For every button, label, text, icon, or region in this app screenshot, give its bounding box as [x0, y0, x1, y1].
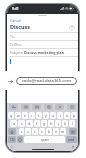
- button[interactable]: Cc/Bcc:: [7, 41, 78, 48]
- button[interactable]: o: [64, 112, 70, 119]
- staticText: r: [31, 113, 33, 118]
- staticText: c: [34, 129, 36, 134]
- button[interactable]: v: [39, 128, 45, 135]
- staticText: To:: [10, 34, 15, 39]
- staticText: Discuss marketing plan: [24, 50, 64, 55]
- button[interactable]: t: [36, 112, 42, 119]
- staticText: o: [66, 113, 69, 118]
- staticText: e: [24, 113, 26, 118]
- button[interactable]: w: [15, 112, 21, 119]
- button[interactable]: space: [24, 136, 65, 143]
- button[interactable]: Tool 3: [44, 104, 53, 110]
- staticText: j: [58, 121, 59, 126]
- button[interactable]: To:: [7, 33, 78, 40]
- button[interactable]: r: [29, 112, 35, 119]
- staticText: y: [45, 113, 47, 118]
- staticText: l: [72, 121, 73, 126]
- button[interactable]: m: [60, 128, 66, 135]
- button[interactable]: y: [43, 112, 49, 119]
- button[interactable]: l: [69, 120, 75, 127]
- button[interactable]: Tool 4: [55, 104, 64, 110]
- button[interactable]: c: [32, 128, 38, 135]
- button[interactable]: [7, 57, 78, 103]
- staticText: k: [64, 121, 66, 126]
- staticText: z: [21, 129, 23, 134]
- button[interactable]: f: [34, 120, 40, 127]
- button[interactable]: Delete: [69, 128, 77, 135]
- button[interactable]: u: [50, 112, 56, 119]
- staticText: todo@mail.data365.com: [22, 78, 71, 84]
- button[interactable]: i: [57, 112, 63, 119]
- button[interactable]: Insert: [7, 78, 14, 85]
- staticText: x: [27, 129, 29, 134]
- button[interactable]: Tool 2: [32, 104, 41, 110]
- button[interactable]: q: [8, 112, 14, 119]
- staticText: Cancel: [10, 18, 22, 23]
- staticText: 9:41: [12, 6, 19, 11]
- staticText: s: [21, 121, 23, 126]
- staticText: i: [60, 113, 61, 118]
- button[interactable]: Tool 5: [67, 104, 76, 110]
- button[interactable]: s: [18, 120, 25, 127]
- staticText: v: [41, 129, 43, 134]
- staticText: h: [50, 121, 53, 126]
- button[interactable]: Subject:: [7, 49, 78, 56]
- button[interactable]: Tool 1: [21, 104, 30, 110]
- button[interactable]: j: [55, 120, 61, 127]
- button[interactable]: k: [62, 120, 68, 127]
- staticText: Discuss marketing plan: [10, 23, 39, 32]
- button[interactable]: n: [53, 128, 59, 135]
- button[interactable]: p: [71, 112, 77, 119]
- button[interactable]: b: [46, 128, 52, 135]
- button[interactable]: Globe: [10, 145, 14, 149]
- button[interactable]: send: [66, 136, 77, 143]
- button[interactable]: Send: [69, 25, 75, 31]
- button[interactable]: Dictation: [71, 145, 75, 149]
- staticText: 123: [10, 138, 15, 142]
- staticText: q: [10, 113, 13, 118]
- staticText: space: [41, 138, 49, 142]
- staticText: p: [73, 113, 76, 118]
- staticText: d: [28, 121, 31, 126]
- button[interactable]: Tool 0: [9, 104, 18, 110]
- button[interactable]: z: [19, 128, 24, 135]
- button[interactable]: todo@mail.data365.com: [16, 77, 77, 85]
- staticText: u: [52, 113, 55, 118]
- staticText: t: [38, 113, 40, 118]
- button[interactable]: a: [10, 120, 17, 127]
- button[interactable]: Numbers: [8, 136, 16, 143]
- button[interactable]: e: [22, 112, 28, 119]
- button[interactable]: Shift: [8, 128, 16, 135]
- button[interactable]: h: [48, 120, 54, 127]
- staticText: Cc/Bcc:: [10, 42, 22, 47]
- button[interactable]: g: [41, 120, 47, 127]
- button[interactable]: d: [26, 120, 33, 127]
- staticText: m: [61, 129, 65, 134]
- staticText: a: [13, 121, 15, 126]
- staticText: Subject:: [10, 50, 23, 55]
- staticText: b: [48, 129, 51, 134]
- staticText: n: [55, 129, 58, 134]
- staticText: g: [43, 121, 46, 126]
- staticText: f: [36, 121, 38, 126]
- staticText: w: [17, 113, 20, 118]
- staticText: send: [68, 138, 75, 142]
- button[interactable]: Cancel: [10, 18, 22, 23]
- button[interactable]: x: [25, 128, 31, 135]
- button[interactable]: Emoji: [17, 136, 23, 143]
